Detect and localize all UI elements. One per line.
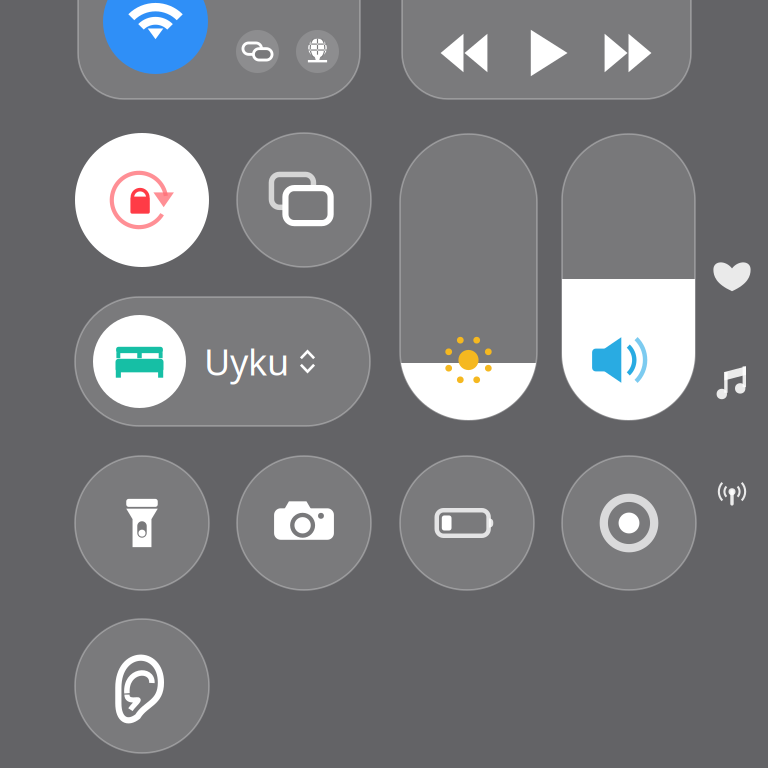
button[interactable]: Volume — [562, 134, 695, 420]
button[interactable]: Camera — [237, 456, 371, 590]
button[interactable]: Fast forward — [602, 27, 654, 79]
button[interactable]: Music Recognition — [712, 364, 752, 404]
button[interactable]: AirPlay — [712, 472, 752, 512]
button[interactable]: AirDrop — [236, 30, 279, 73]
button[interactable]: Uyku — [75, 297, 370, 426]
button[interactable]: Screen Mirroring — [237, 133, 371, 267]
button[interactable]: Wi-Fi — [103, 0, 208, 74]
button[interactable]: Brightness — [400, 134, 537, 420]
button[interactable]: Health — [712, 256, 752, 296]
button[interactable]: Flashlight — [75, 456, 209, 590]
button[interactable]: Rewind — [438, 27, 490, 79]
button[interactable]: Hearing — [75, 619, 209, 753]
button[interactable]: Low Power Mode — [400, 456, 534, 590]
button[interactable]: Rotation Lock — [75, 133, 209, 267]
button[interactable]: Screen Recording — [562, 456, 696, 590]
button[interactable]: Play — [520, 26, 574, 80]
button[interactable]: Personal Hotspot — [296, 30, 339, 73]
staticText: Uyku — [204, 338, 289, 385]
